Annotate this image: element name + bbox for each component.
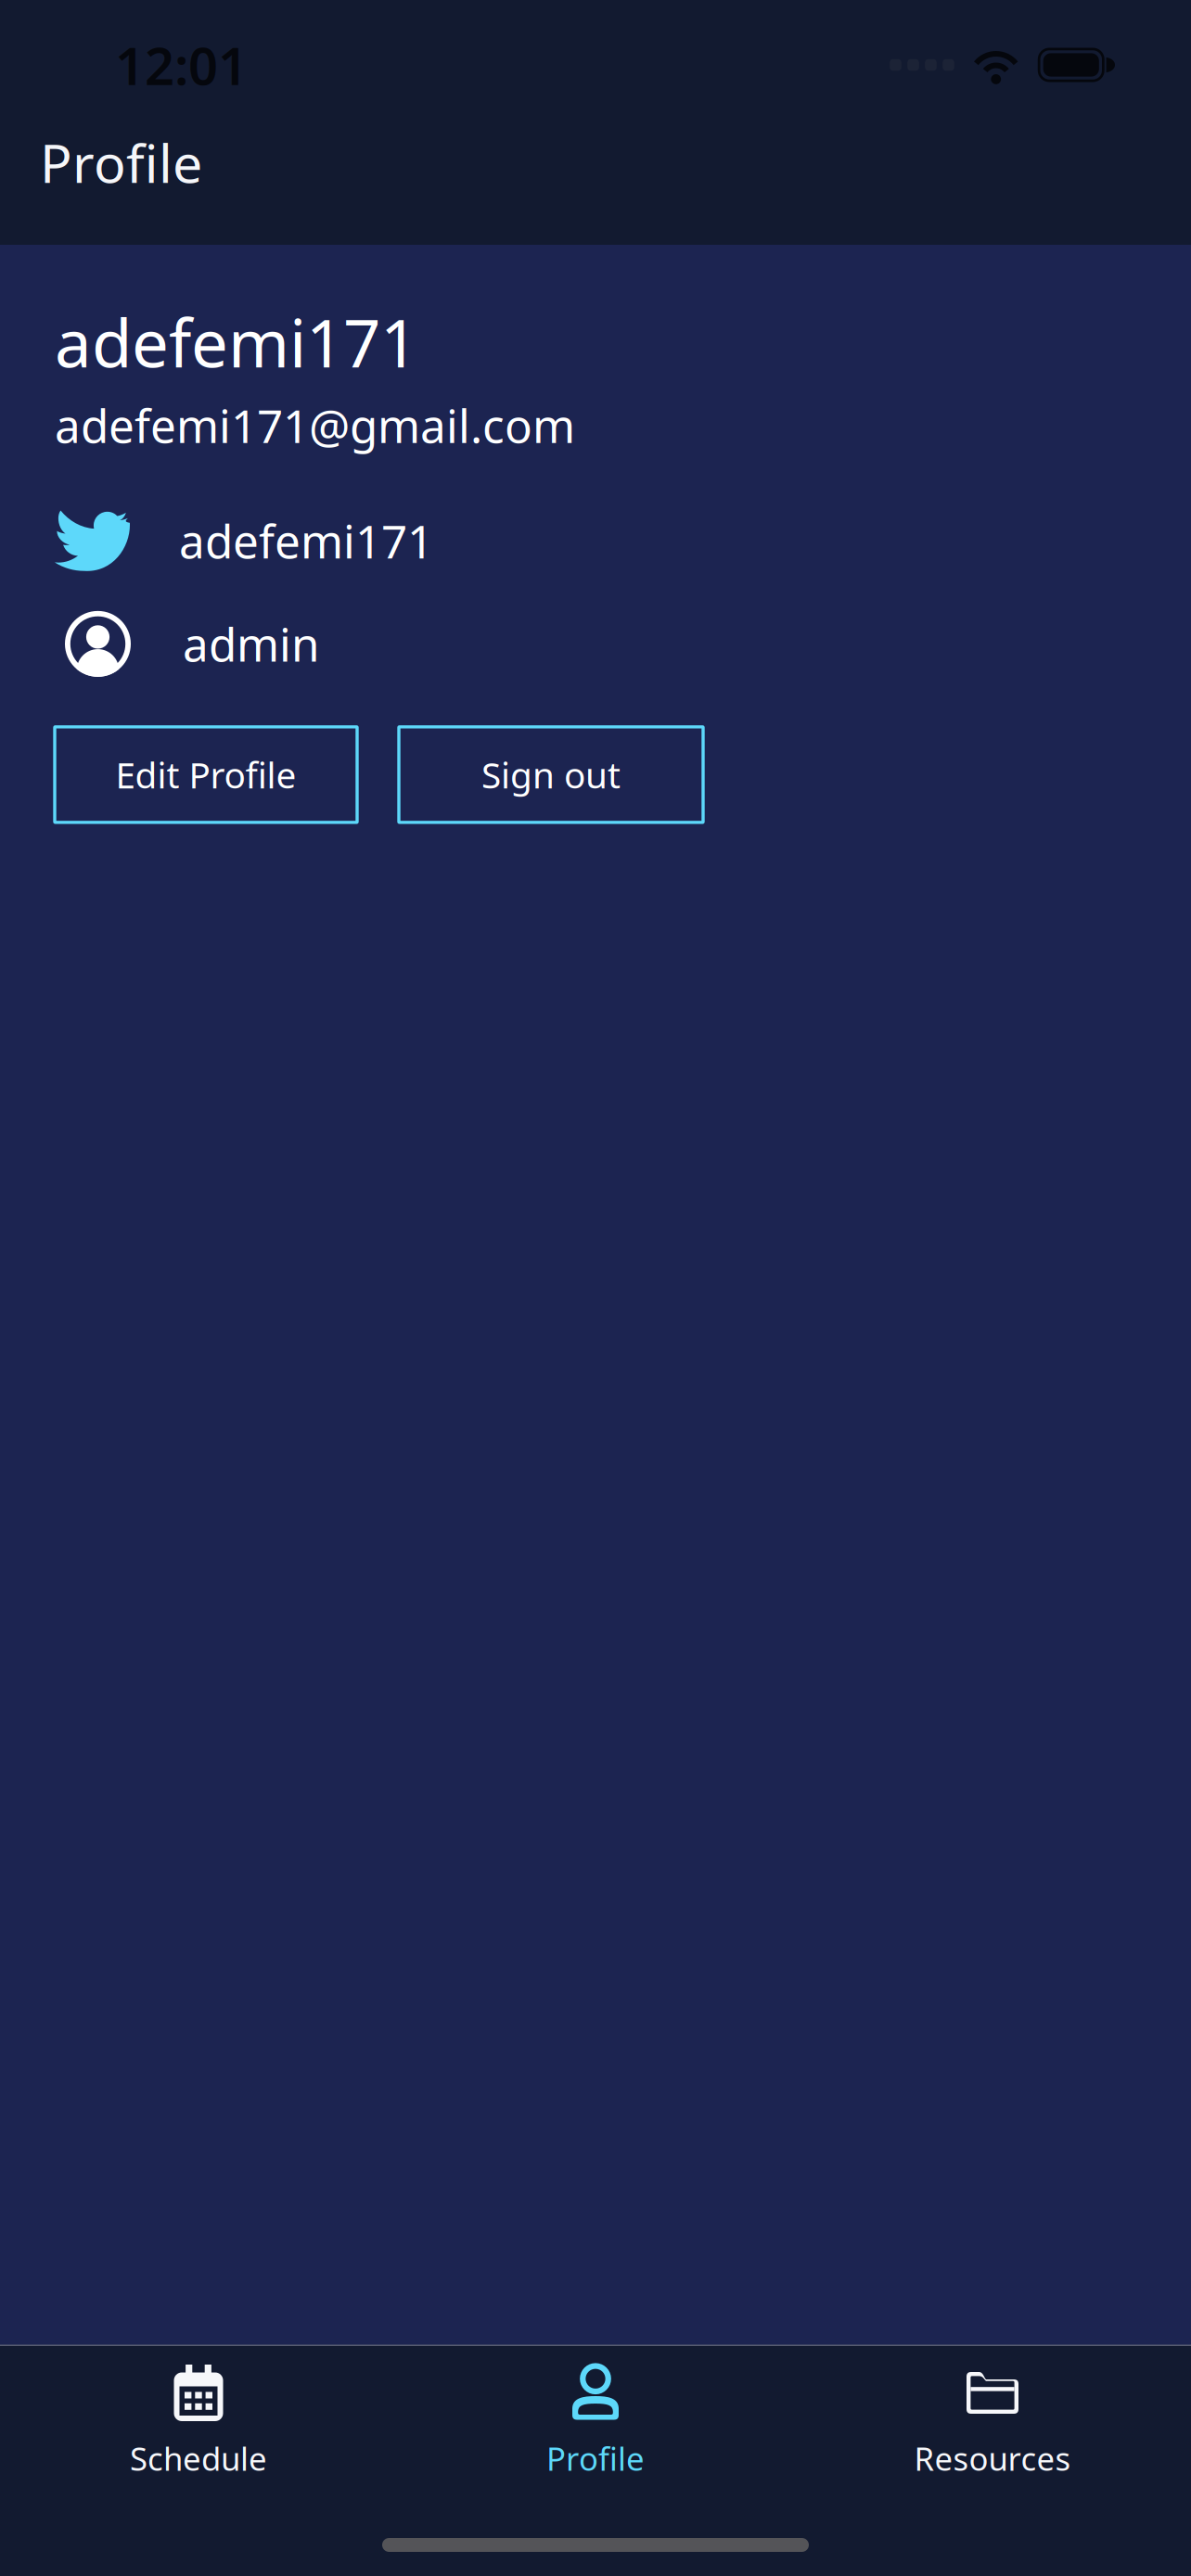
- staticText: adefemi171: [179, 510, 433, 571]
- button[interactable]: Edit Profile: [55, 727, 357, 822]
- staticText: adefemi171@gmail.com: [55, 395, 575, 456]
- staticText: adefemi171: [55, 299, 417, 386]
- staticText: Profile: [546, 2437, 645, 2480]
- staticText: Sign out: [481, 751, 621, 798]
- staticText: Edit Profile: [115, 751, 296, 798]
- staticText: 12:01: [115, 30, 248, 99]
- staticText: Profile: [40, 127, 202, 198]
- button[interactable]: Profile: [397, 2365, 794, 2480]
- staticText: Schedule: [130, 2437, 267, 2480]
- button[interactable]: Schedule: [0, 2365, 397, 2480]
- button[interactable]: Resources: [794, 2365, 1191, 2480]
- button[interactable]: Sign out: [399, 727, 703, 822]
- staticText: admin: [183, 613, 319, 674]
- staticText: Resources: [914, 2437, 1071, 2480]
